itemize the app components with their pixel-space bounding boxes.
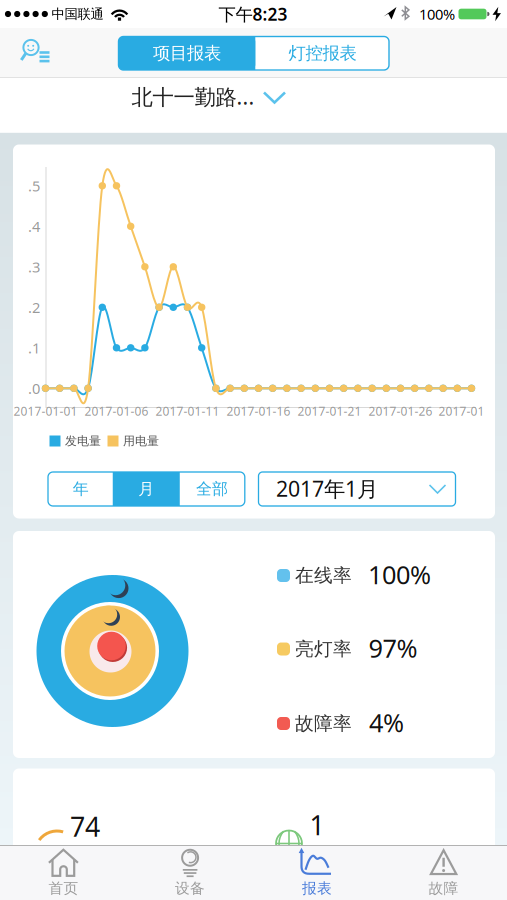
staticText: 下午8:23 — [218, 2, 287, 25]
staticText: 2017-01-21 — [297, 403, 361, 419]
button[interactable]: 故障 — [381, 846, 507, 900]
button[interactable]: 报表 — [254, 846, 380, 900]
staticText: 首页 — [48, 879, 78, 897]
staticText: 1 — [309, 807, 324, 843]
staticText: 在线率 — [295, 564, 352, 587]
staticText: .1 — [28, 338, 40, 358]
staticText: .0 — [28, 379, 40, 398]
staticText: .5 — [28, 176, 40, 196]
staticText: 2017-01 — [438, 403, 484, 419]
button[interactable]: 全部 — [180, 473, 243, 505]
staticText: 月 — [138, 479, 154, 499]
button[interactable]: 首页 — [0, 846, 126, 900]
staticText: .3 — [28, 257, 40, 277]
staticText: 报表 — [302, 879, 332, 897]
staticText: 中国联通 — [51, 6, 103, 22]
staticText: 北十一勤路... — [131, 82, 254, 111]
staticText: 全部 — [196, 479, 228, 499]
staticText: 2017-01-01 — [13, 403, 77, 419]
staticText: 用电量 — [123, 434, 159, 448]
staticText: 项目报表 — [153, 43, 221, 64]
staticText: 设备 — [175, 879, 205, 897]
button[interactable]: 2017年1月 — [257, 471, 456, 507]
staticText: 亮灯率 — [295, 637, 352, 660]
staticText: 74 — [70, 809, 100, 844]
button[interactable]: 项目报表 — [118, 36, 255, 70]
button[interactable]: 搜索项目 — [10, 31, 56, 69]
button[interactable]: 北十一勤路... — [105, 76, 295, 120]
staticText: 故障 — [429, 879, 459, 897]
staticText: 发电量 — [65, 434, 101, 448]
staticText: 灯控报表 — [288, 43, 356, 64]
staticText: 故障率 — [295, 712, 352, 735]
staticText: 2017-01-26 — [368, 403, 432, 419]
staticText: .4 — [28, 217, 40, 236]
staticText: 2017-01-11 — [155, 403, 219, 419]
button[interactable]: 灯控报表 — [256, 36, 389, 70]
staticText: 2017-01-06 — [84, 403, 148, 419]
staticText: 100% — [368, 558, 431, 591]
button[interactable]: 设备 — [127, 846, 253, 900]
staticText: 年 — [73, 479, 89, 499]
staticText: 100% — [419, 4, 455, 24]
button[interactable]: 月 — [115, 473, 178, 505]
button[interactable]: 年 — [49, 473, 112, 505]
staticText: 2017-01-16 — [226, 403, 290, 419]
staticText: 2017年1月 — [276, 474, 378, 503]
staticText: 4% — [369, 706, 404, 739]
staticText: 97% — [368, 631, 417, 665]
staticText: .2 — [28, 298, 40, 317]
